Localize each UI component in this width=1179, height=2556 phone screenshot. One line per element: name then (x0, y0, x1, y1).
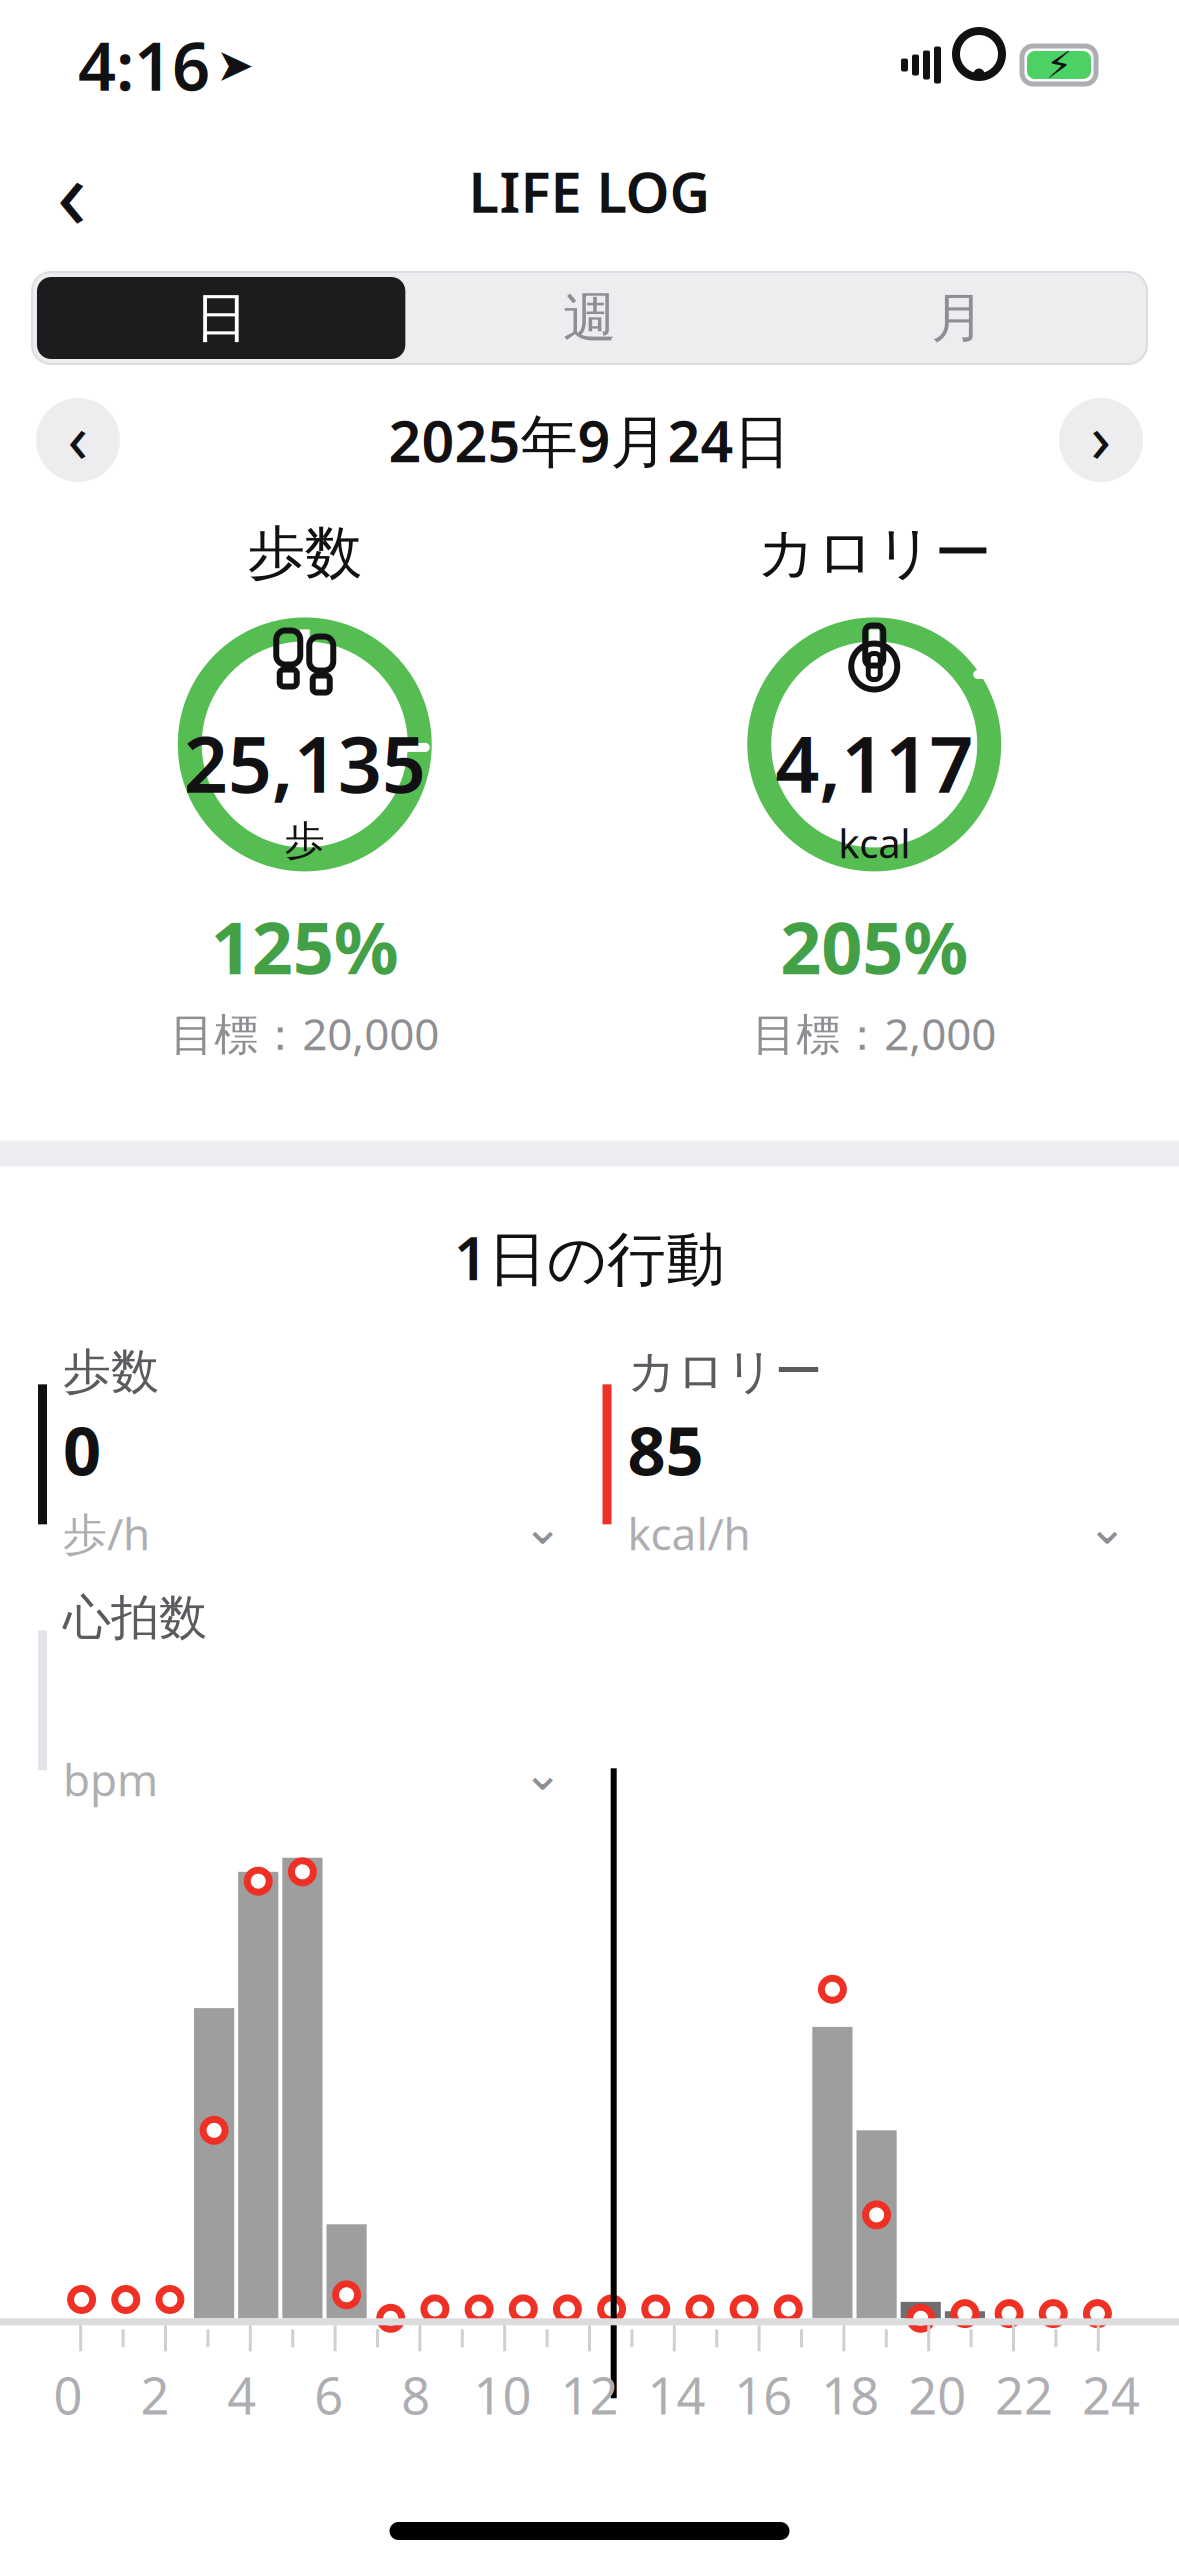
staticText: 4:16 (78, 21, 210, 109)
staticText: 6 (314, 2361, 343, 2429)
staticText: 0 (63, 1405, 101, 1494)
button[interactable]: Back (24, 143, 120, 239)
button[interactable]: 歩数 (38, 1342, 576, 1566)
staticText: ⚡︎ (1046, 44, 1072, 86)
staticText: 1日の行動 (454, 1218, 725, 1296)
staticText: ⌄ (522, 1500, 562, 1554)
staticText: kcal (838, 816, 910, 869)
staticText: 20 (908, 2361, 966, 2429)
staticText: 週 (563, 285, 616, 351)
staticText: 10 (474, 2361, 532, 2429)
staticText: 日 (195, 285, 248, 351)
staticText: ➤ (216, 39, 254, 91)
staticText: 22 (995, 2361, 1053, 2429)
staticText: 14 (647, 2361, 705, 2429)
button[interactable]: 心拍数 (38, 1588, 576, 1812)
staticText: 18 (821, 2361, 879, 2429)
staticText: カロリー (627, 1342, 822, 1401)
button[interactable]: Previous day (36, 398, 120, 482)
staticText: 歩数 (63, 1342, 159, 1401)
staticText: ‹ (56, 125, 87, 256)
staticText: 205% (780, 898, 968, 994)
staticText: ⌄ (522, 1746, 562, 1800)
staticText: 4 (227, 2361, 256, 2429)
staticText: 歩/h (63, 1504, 150, 1562)
staticText: 2025年9月24日 (388, 402, 790, 478)
staticText: 0 (53, 2361, 82, 2429)
staticText: 歩 (285, 816, 325, 865)
staticText: kcal/h (627, 1504, 750, 1562)
staticText: 125% (211, 898, 399, 994)
staticText: 月 (931, 285, 984, 351)
button[interactable]: 週 (405, 277, 774, 359)
staticText: bpm (63, 1750, 158, 1808)
staticText: 心拍数 (63, 1588, 207, 1647)
button[interactable]: Next day (1059, 398, 1143, 482)
staticText: 歩数 (248, 518, 362, 588)
staticText: 85 (627, 1405, 703, 1494)
staticText: 目標：2,000 (752, 1004, 996, 1062)
staticText: ‹ (67, 393, 88, 481)
staticText: ⌄ (1087, 1500, 1127, 1554)
staticText: 12 (560, 2361, 618, 2429)
staticText: LIFE LOG (468, 154, 710, 228)
staticText: 4,117 (775, 711, 973, 814)
staticText: 2 (140, 2361, 169, 2429)
staticText: 16 (734, 2361, 792, 2429)
staticText: 24 (1082, 2361, 1140, 2429)
staticText: 目標：20,000 (170, 1004, 439, 1062)
button[interactable]: カロリー (602, 1342, 1141, 1566)
staticText: › (1090, 393, 1111, 481)
staticText: カロリー (757, 518, 991, 588)
button[interactable]: 月 (774, 277, 1142, 359)
staticText: 25,135 (184, 711, 426, 814)
button[interactable]: 日 (37, 277, 405, 359)
staticText: 8 (401, 2361, 430, 2429)
